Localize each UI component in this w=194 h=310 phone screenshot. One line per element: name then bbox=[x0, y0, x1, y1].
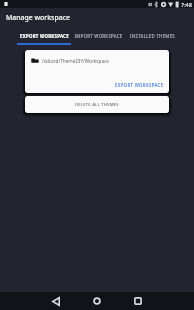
staticText: /sdcard/ThemeDIY/Workspace bbox=[42, 58, 109, 64]
button[interactable]: Home bbox=[88, 292, 106, 310]
button[interactable]: INSTALLED THEMES bbox=[125, 26, 179, 45]
button[interactable]: Recent apps bbox=[129, 292, 147, 310]
staticText: EXPORT WORKSPACE bbox=[115, 82, 164, 88]
button[interactable]: EXPORT WORKSPACE bbox=[110, 77, 169, 93]
staticText: 7:48 bbox=[181, 1, 192, 8]
button[interactable]: DELETE ALL THEMES bbox=[25, 96, 169, 113]
button[interactable]: EXPORT WORKSPACE bbox=[17, 26, 71, 45]
staticText: IMPORT WORKSPACE bbox=[74, 33, 123, 39]
staticText: DELETE ALL THEMES bbox=[75, 102, 119, 108]
staticText: INSTALLED THEMES bbox=[130, 33, 175, 39]
button[interactable]: IMPORT WORKSPACE bbox=[71, 26, 125, 45]
button[interactable]: Back bbox=[47, 292, 65, 310]
staticText: EXPORT WORKSPACE bbox=[20, 33, 69, 39]
staticText: Manage workspace bbox=[6, 13, 70, 22]
